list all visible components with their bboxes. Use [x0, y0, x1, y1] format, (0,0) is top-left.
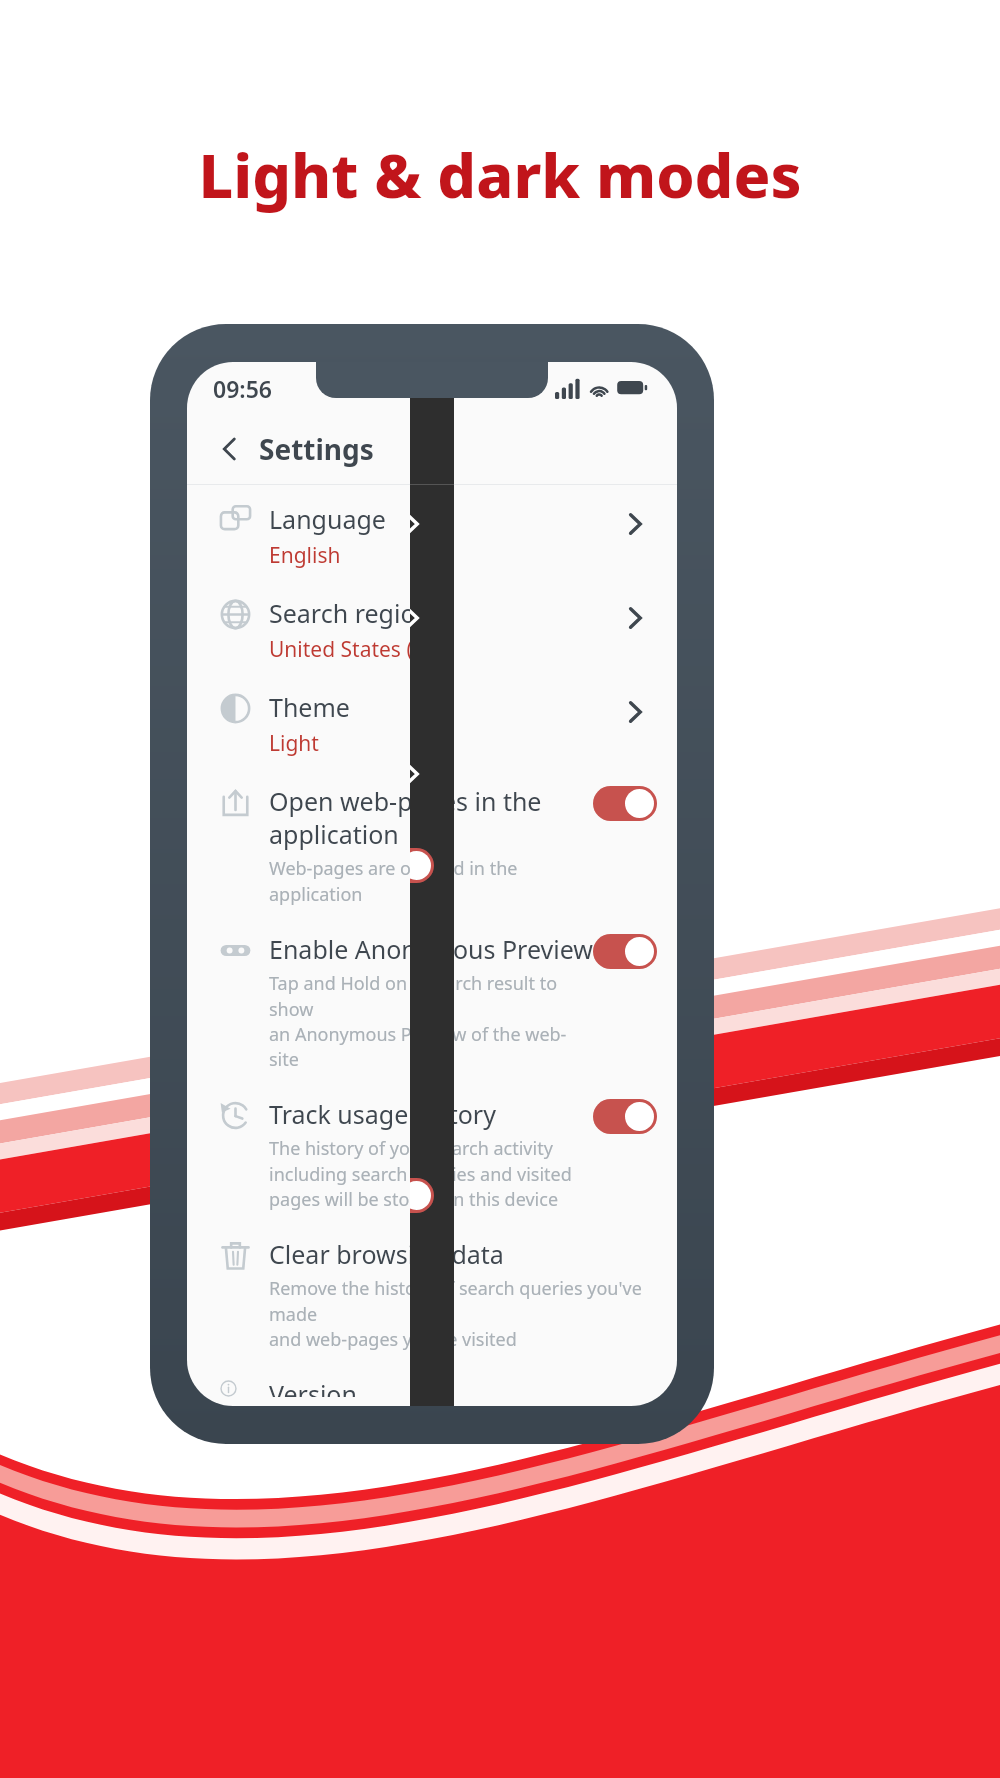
button[interactable]: Open Theme	[613, 690, 657, 734]
button[interactable]: Version	[187, 1360, 677, 1406]
button[interactable]: Open Language	[410, 502, 434, 546]
button[interactable]: Language	[187, 485, 677, 579]
button[interactable]: Theme	[187, 673, 677, 767]
staticText: Web-pages are opened in the application	[269, 856, 518, 906]
button[interactable]: Toggle Open web-pages in the application	[593, 786, 657, 821]
staticText: Enable Anonymous Preview	[269, 932, 593, 966]
staticText: United States (en)	[269, 635, 444, 664]
staticText: Search region	[269, 596, 431, 630]
button[interactable]: Open Search region	[613, 596, 657, 640]
staticText: Clear browsing data	[269, 1237, 504, 1271]
staticText: Theme	[269, 690, 350, 724]
button[interactable]: Toggle Enable Anonymous Preview	[593, 934, 657, 969]
staticText: Settings	[259, 430, 374, 468]
button[interactable]: Back	[209, 428, 251, 470]
button[interactable]: Theme	[410, 735, 454, 829]
button[interactable]: Toggle Track usage history	[593, 1099, 657, 1134]
staticText: Open web-pages in the application	[269, 784, 542, 851]
staticText: Track usage history	[269, 1097, 496, 1131]
button[interactable]: Open Language	[613, 502, 657, 546]
staticText: Remove the history of search queries you…	[269, 1276, 657, 1351]
staticText: 09:56	[213, 373, 272, 404]
button[interactable]: Open Theme	[410, 752, 434, 796]
staticText: The history of your search activity incl…	[269, 1136, 572, 1211]
staticText: Light & dark modes	[198, 133, 802, 216]
button[interactable]: Track usage history	[187, 1080, 677, 1220]
button[interactable]: Open web-pages in the application	[410, 829, 454, 1159]
button[interactable]: Enable Anonymous Preview	[187, 915, 677, 1080]
staticText: English	[269, 541, 341, 570]
button[interactable]: Open web-pages in the application	[187, 767, 677, 915]
button[interactable]: Clear browsing data	[187, 1220, 677, 1360]
button[interactable]: Open Search region	[410, 596, 434, 640]
staticText: Version	[269, 1377, 357, 1397]
button[interactable]: Toggle Enable Anonymous Preview	[410, 1178, 434, 1213]
button[interactable]: Search region	[187, 579, 677, 673]
button[interactable]: Toggle Open web-pages in the application	[410, 848, 434, 883]
button[interactable]: Language	[410, 485, 454, 579]
staticText: Light	[269, 729, 319, 758]
staticText: Language	[269, 502, 386, 536]
button[interactable]: Search region	[410, 579, 454, 735]
button[interactable]: Enable Anonymous Preview	[410, 1159, 454, 1406]
staticText: Tap and Hold on a search result to show …	[269, 971, 593, 1071]
